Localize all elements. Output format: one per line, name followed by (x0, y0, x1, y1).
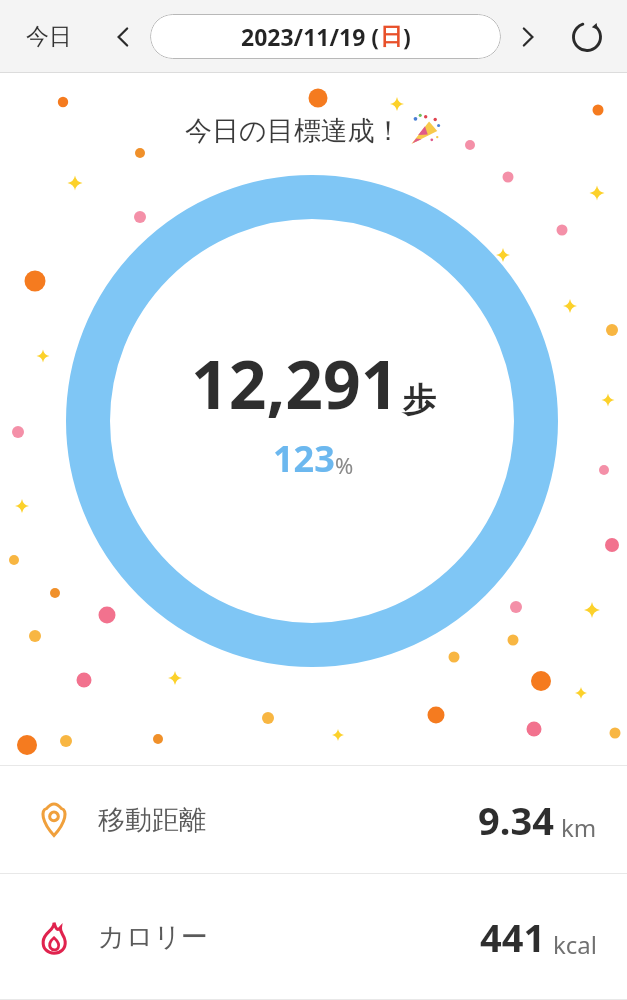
staticText: 移動距離 (98, 803, 206, 837)
staticText: 歩 (403, 379, 436, 421)
staticText: 123 (273, 434, 335, 483)
button[interactable]: 2023/11/19 ( (150, 14, 501, 59)
staticText: % (335, 450, 354, 480)
button[interactable]: 今日 (18, 14, 80, 59)
staticText: 日 (380, 22, 403, 51)
button[interactable]: Refresh (565, 15, 609, 59)
button[interactable]: Previous day (104, 18, 142, 56)
button[interactable]: カロリー (0, 874, 627, 999)
staticText: 今日の目標達成！ (185, 114, 402, 148)
staticText: 441 (480, 911, 546, 963)
staticText: カロリー (98, 920, 208, 954)
staticText: ) (403, 21, 411, 52)
staticText: km (561, 811, 597, 844)
staticText: 2023/11/19 ( (241, 21, 380, 52)
staticText: 12,291 (191, 338, 399, 428)
staticText: 今日 (26, 22, 72, 51)
staticText: kcal (553, 928, 597, 961)
staticText: 9.34 (478, 794, 554, 846)
button[interactable]: Next day (509, 18, 547, 56)
button[interactable]: 移動距離 (0, 766, 627, 873)
